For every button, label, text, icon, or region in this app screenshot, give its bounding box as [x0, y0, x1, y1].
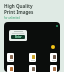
- button[interactable]: [29, 53, 36, 62]
- staticText: Print Images: [4, 9, 34, 15]
- staticText: High Quality: [4, 3, 33, 9]
- button[interactable]: [50, 65, 57, 72]
- button[interactable]: [7, 53, 14, 62]
- button[interactable]: Enter: [11, 35, 25, 39]
- staticText: for unlimited: [4, 16, 20, 20]
- staticText: Enter: [15, 35, 22, 39]
- button[interactable]: [7, 65, 14, 72]
- button[interactable]: [50, 53, 57, 62]
- button[interactable]: [29, 65, 36, 72]
